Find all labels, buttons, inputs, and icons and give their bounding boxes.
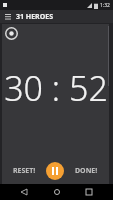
staticText: DONE! bbox=[75, 166, 98, 176]
button[interactable]: DONE! bbox=[64, 158, 109, 184]
button[interactable]: RESET! bbox=[2, 158, 46, 184]
staticText: 31 HEROES bbox=[16, 12, 54, 22]
button[interactable]: Timer options bbox=[5, 27, 18, 40]
button[interactable]: Recent apps bbox=[81, 184, 97, 200]
button[interactable]: Pause bbox=[46, 162, 64, 180]
button[interactable]: Back bbox=[16, 184, 32, 200]
staticText: 1:32 bbox=[100, 2, 110, 9]
staticText: RESET! bbox=[13, 166, 36, 176]
staticText: 30 : 52 bbox=[4, 65, 108, 111]
button[interactable]: Open navigation menu bbox=[3, 12, 12, 21]
button[interactable]: Home bbox=[49, 184, 65, 200]
